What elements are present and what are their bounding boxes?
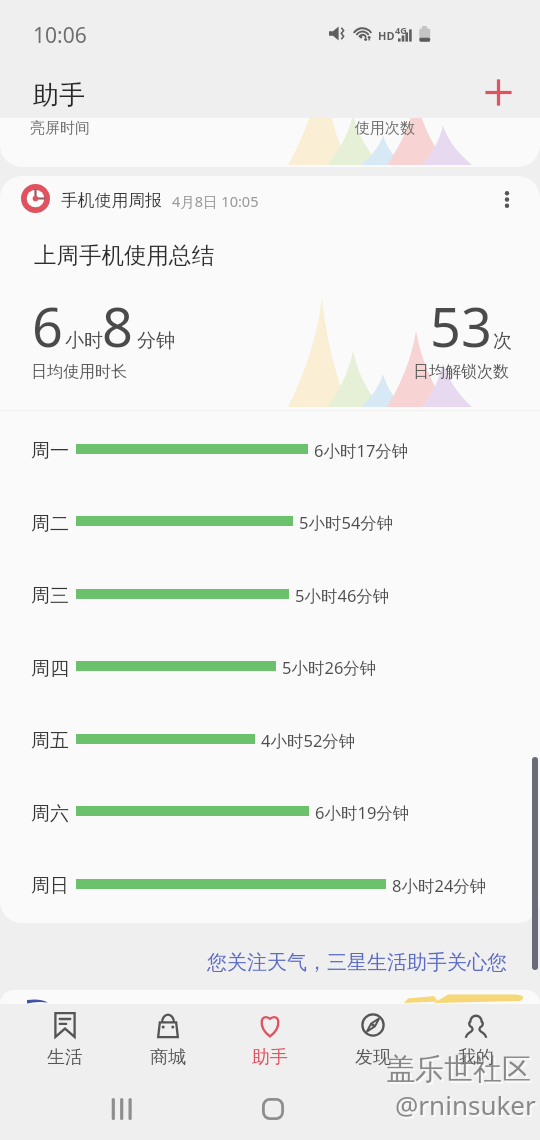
staticText: 我的 bbox=[458, 1046, 494, 1069]
button[interactable]: 您关注天气，三星生活助手关心您 bbox=[207, 950, 507, 975]
staticText: 商城 bbox=[150, 1046, 186, 1069]
button[interactable]: 生活 bbox=[13, 1004, 116, 1078]
button[interactable]: 商城 bbox=[116, 1004, 219, 1078]
staticText: 5小时26分钟 bbox=[282, 656, 377, 679]
staticText: 助手 bbox=[252, 1046, 288, 1069]
staticText: 上周手机使用总结 bbox=[34, 241, 214, 269]
staticText: 5小时46分钟 bbox=[295, 584, 390, 607]
staticText: 6小时17分钟 bbox=[314, 439, 409, 462]
staticText: 日均使用时长 bbox=[31, 362, 127, 382]
staticText: 8 bbox=[102, 289, 133, 363]
staticText: 分钟 bbox=[137, 329, 175, 353]
staticText: 4小时52分钟 bbox=[261, 729, 356, 752]
staticText: 助手 bbox=[33, 79, 85, 112]
staticText: 53 bbox=[430, 289, 492, 363]
staticText: 发现 bbox=[355, 1046, 391, 1069]
staticText: 周二 bbox=[31, 512, 69, 536]
button[interactable]: Recents bbox=[84, 1086, 158, 1132]
staticText: 周三 bbox=[31, 584, 69, 608]
button[interactable] bbox=[0, 990, 540, 1004]
staticText: 10:06 bbox=[33, 21, 87, 50]
staticText: 手机使用周报 bbox=[61, 190, 162, 211]
staticText: 8小时24分钟 bbox=[392, 874, 487, 897]
staticText: 使用次数 bbox=[355, 119, 415, 138]
button[interactable]: Add bbox=[478, 72, 518, 112]
button[interactable]: Back bbox=[388, 1086, 462, 1132]
button[interactable]: Home bbox=[236, 1086, 310, 1132]
staticText: 小时 bbox=[65, 329, 103, 353]
staticText: 4G bbox=[395, 24, 407, 36]
button[interactable]: 发现 bbox=[321, 1004, 424, 1078]
button[interactable]: 我的 bbox=[424, 1004, 527, 1078]
staticText: 日均解锁次数 bbox=[413, 362, 509, 382]
staticText: 6 bbox=[32, 289, 63, 363]
staticText: 4月8日 10:05 bbox=[172, 191, 259, 211]
staticText: 周六 bbox=[31, 802, 69, 826]
staticText: 盖乐世社区 bbox=[386, 1051, 531, 1088]
button[interactable]: 亮屏时间 bbox=[0, 118, 540, 167]
staticText: HD bbox=[378, 28, 395, 43]
staticText: 次 bbox=[493, 329, 512, 353]
staticText: 盖乐世社区 bbox=[388, 1053, 533, 1090]
staticText: 5小时54分钟 bbox=[299, 511, 394, 534]
button[interactable]: 助手 bbox=[218, 1004, 321, 1078]
staticText: 生活 bbox=[47, 1046, 83, 1069]
staticText: 亮屏时间 bbox=[30, 119, 90, 138]
staticText: 周五 bbox=[31, 729, 69, 753]
staticText: @rninsuker bbox=[395, 1087, 536, 1122]
staticText: 周日 bbox=[31, 874, 69, 898]
staticText: @rninsuker bbox=[397, 1089, 538, 1124]
staticText: 6小时19分钟 bbox=[315, 801, 410, 824]
button[interactable]: More options bbox=[489, 181, 525, 217]
staticText: 周四 bbox=[31, 657, 69, 681]
button[interactable]: 手机使用周报 bbox=[0, 176, 540, 923]
staticText: 周一 bbox=[31, 439, 69, 463]
